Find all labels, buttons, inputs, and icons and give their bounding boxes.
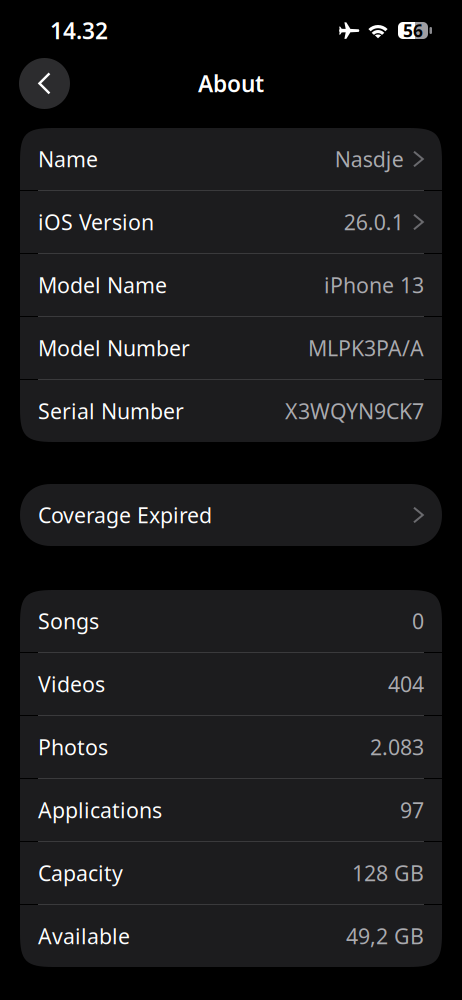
staticText: Serial Number: [38, 397, 184, 425]
staticText: Songs: [38, 607, 99, 635]
staticText: 2.083: [370, 733, 424, 761]
staticText: 404: [388, 670, 424, 698]
button[interactable]: Videos: [20, 653, 442, 715]
button[interactable]: iOS Version: [20, 191, 442, 253]
button[interactable]: Coverage Expired: [20, 484, 442, 546]
staticText: Model Number: [38, 334, 190, 362]
staticText: Videos: [38, 670, 105, 698]
staticText: Name: [38, 145, 98, 173]
staticText: 56: [403, 19, 423, 42]
button[interactable]: Applications: [20, 779, 442, 841]
staticText: 49,2 GB: [346, 922, 424, 950]
staticText: Available: [38, 922, 130, 950]
button[interactable]: Back: [19, 58, 70, 109]
button[interactable]: Available: [20, 905, 442, 967]
staticText: 26.0.1: [344, 208, 404, 236]
button[interactable]: Serial Number: [20, 380, 442, 442]
staticText: Capacity: [38, 859, 123, 887]
button[interactable]: Model Name: [20, 254, 442, 316]
staticText: About: [198, 68, 264, 98]
button[interactable]: Songs: [20, 590, 442, 652]
staticText: MLPK3PA/A: [308, 334, 424, 362]
staticText: Photos: [38, 733, 108, 761]
staticText: iPhone 13: [324, 271, 424, 299]
staticText: 14.32: [50, 15, 108, 45]
button[interactable]: Photos: [20, 716, 442, 778]
staticText: 0: [412, 607, 424, 635]
staticText: Coverage Expired: [38, 501, 212, 529]
staticText: Applications: [38, 796, 162, 824]
staticText: Nasdje: [335, 145, 404, 173]
staticText: 97: [400, 796, 424, 824]
staticText: iOS Version: [38, 208, 154, 236]
staticText: Model Name: [38, 271, 167, 299]
button[interactable]: Name: [20, 128, 442, 190]
button[interactable]: Capacity: [20, 842, 442, 904]
staticText: X3WQYN9CK7: [285, 397, 424, 425]
button[interactable]: Model Number: [20, 317, 442, 379]
staticText: 128 GB: [352, 859, 424, 887]
